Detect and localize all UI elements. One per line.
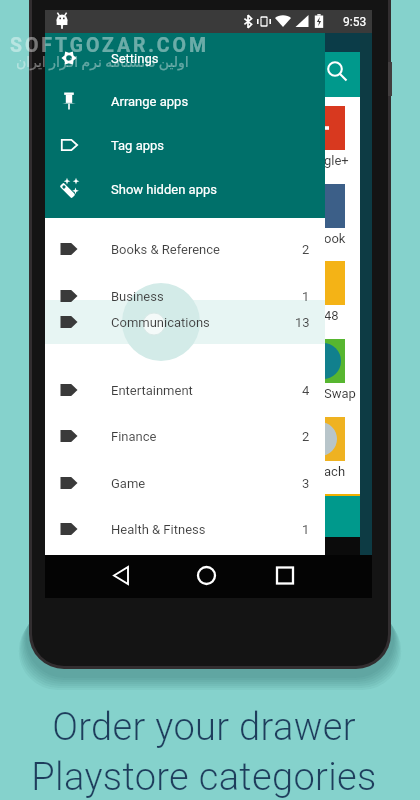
- button[interactable]: Settings: [45, 36, 325, 80]
- button[interactable]: Books & Reference: [45, 227, 325, 271]
- button[interactable]: Business: [45, 274, 325, 318]
- staticText: Order your drawer: [52, 705, 356, 750]
- staticText: 2: [302, 429, 310, 444]
- staticText: 3: [302, 476, 310, 491]
- staticText: 13: [295, 315, 310, 330]
- button[interactable]: Health & Fitness: [45, 507, 325, 551]
- button[interactable]: Game: [45, 461, 325, 505]
- staticText: SOFTGOZAR.COM: [10, 34, 209, 57]
- staticText: Settings: [111, 51, 159, 66]
- staticText: 4: [302, 383, 310, 398]
- staticText: ach: [324, 464, 346, 479]
- staticText: Books & Reference: [111, 242, 220, 257]
- staticText: Health & Fitness: [111, 522, 206, 537]
- staticText: 1: [302, 289, 310, 304]
- button[interactable]: Search: [326, 60, 350, 84]
- staticText: Swap: [324, 386, 356, 401]
- staticText: 1: [302, 522, 310, 537]
- staticText: Entertainment: [111, 383, 193, 398]
- staticText: Arrange apps: [111, 94, 189, 109]
- staticText: gle+: [324, 153, 349, 168]
- staticText: ook: [324, 231, 346, 246]
- staticText: 48: [324, 308, 339, 323]
- button[interactable]: Arrange apps: [45, 79, 325, 123]
- staticText: Finance: [111, 429, 157, 444]
- button[interactable]: Tag apps: [45, 123, 325, 167]
- staticText: Playstore categories: [31, 755, 377, 800]
- staticText: اولین دانشنامه نرم افزار ایران: [16, 54, 189, 70]
- staticText: Business: [111, 289, 164, 304]
- staticText: Game: [111, 476, 146, 491]
- staticText: 2: [302, 242, 310, 257]
- staticText: Tag apps: [111, 138, 165, 153]
- staticText: Show hidden apps: [111, 182, 217, 197]
- staticText: Communications: [111, 315, 210, 330]
- button[interactable]: Entertainment: [45, 368, 325, 412]
- button[interactable]: Finance: [45, 414, 325, 458]
- button[interactable]: Communications: [45, 300, 325, 344]
- staticText: 9:53: [343, 15, 367, 29]
- button[interactable]: Show hidden apps: [45, 167, 325, 211]
